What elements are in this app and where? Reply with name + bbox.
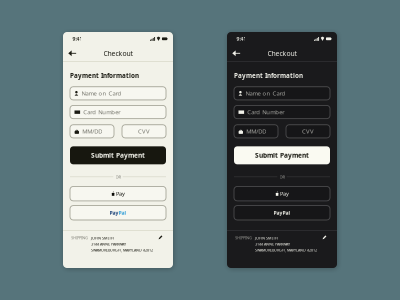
button[interactable]: MM/DD <box>70 125 114 138</box>
staticText: Card Number <box>83 108 120 116</box>
staticText: Pay <box>116 190 125 197</box>
button[interactable]: Submit Payment <box>70 146 166 164</box>
staticText: Checkout <box>267 49 296 58</box>
staticText: SWAMOREBURGH, MARYLAND 42812 <box>255 247 317 253</box>
staticText: CVV <box>302 127 314 135</box>
button[interactable]: Back <box>229 46 243 60</box>
staticText: SWAMOREBURGH, MARYLAND 42812 <box>91 247 153 253</box>
staticText: Name on Card <box>245 89 285 97</box>
staticText: Payment Information <box>70 71 139 80</box>
button[interactable]: CVV <box>122 125 166 138</box>
staticText: JOHN SMITH <box>91 235 114 241</box>
staticText: Checkout <box>103 49 132 58</box>
staticText: Name on Card <box>81 89 121 97</box>
button[interactable]: Pay <box>70 206 166 220</box>
button[interactable]: Name on Card <box>234 87 330 100</box>
staticText: Submit Payment <box>255 151 309 160</box>
staticText: Payment Information <box>234 71 303 80</box>
staticText: Submit Payment <box>91 151 145 160</box>
button[interactable]: Pay <box>234 186 330 201</box>
staticText: 3144 ANNE PARKWAY <box>255 241 290 247</box>
button[interactable]: Submit Payment <box>234 146 330 164</box>
staticText: Pal <box>118 209 126 216</box>
staticText: 9:41 <box>236 35 246 42</box>
staticText: Pal <box>282 209 290 216</box>
button[interactable]: Pay <box>234 206 330 220</box>
button[interactable]: MM/DD <box>234 125 278 138</box>
staticText: Card Number <box>247 108 284 116</box>
button[interactable]: Name on Card <box>70 87 166 100</box>
staticText: Pay <box>280 190 289 197</box>
staticText: MM/DD <box>82 127 102 135</box>
staticText: SHIPPING <box>71 235 88 240</box>
button[interactable]: Card Number <box>234 105 330 119</box>
staticText: Pay <box>109 209 118 216</box>
staticText: OR <box>115 174 120 179</box>
button[interactable]: SHIPPING <box>63 231 173 268</box>
staticText: Pay <box>273 209 282 216</box>
button[interactable]: Back <box>65 46 79 60</box>
staticText: SHIPPING <box>235 235 252 240</box>
button[interactable]: Card Number <box>70 105 166 119</box>
staticText: CVV <box>138 127 150 135</box>
button[interactable]: CVV <box>286 125 330 138</box>
staticText: JOHN SMITH <box>255 235 278 241</box>
button[interactable]: Pay <box>70 186 166 201</box>
staticText: 9:41 <box>72 35 82 42</box>
button[interactable]: SHIPPING <box>227 231 337 268</box>
staticText: 3144 ANNE PARKWAY <box>91 241 126 247</box>
staticText: MM/DD <box>246 127 266 135</box>
staticText: OR <box>279 174 284 179</box>
